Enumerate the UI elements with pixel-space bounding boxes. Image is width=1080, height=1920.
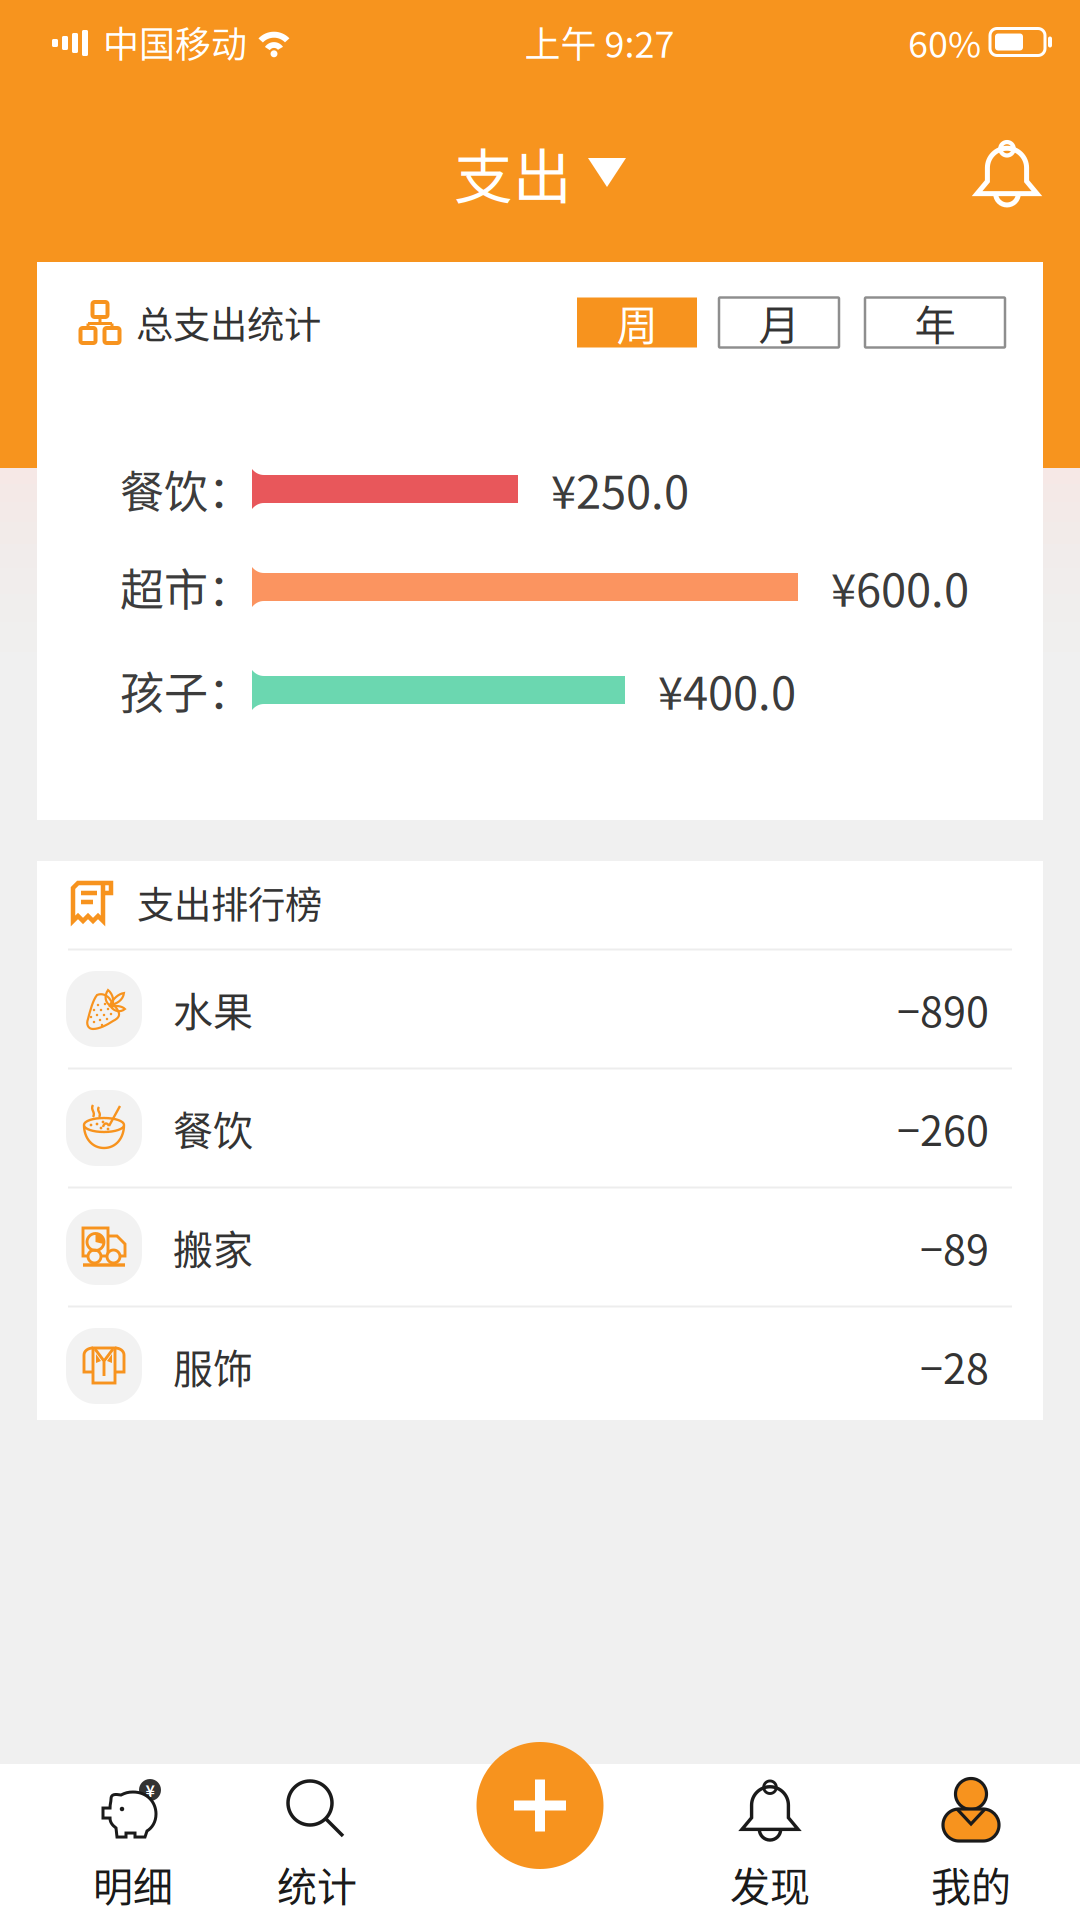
staticText: 餐饮 bbox=[173, 1099, 253, 1157]
button[interactable]: 统计 bbox=[266, 1764, 368, 1920]
staticText: −89 bbox=[920, 1217, 989, 1277]
staticText: 超市： bbox=[120, 555, 252, 619]
staticText: 月 bbox=[758, 293, 799, 352]
staticText: 我的 bbox=[931, 1855, 1011, 1913]
staticText: −260 bbox=[897, 1098, 989, 1158]
staticText: 60% bbox=[908, 16, 981, 68]
button[interactable]: 支出 bbox=[430, 112, 650, 233]
staticText: 支出 bbox=[454, 130, 572, 215]
button[interactable]: ¥ bbox=[0, 1764, 266, 1920]
staticText: 餐饮： bbox=[120, 457, 252, 521]
staticText: 发现 bbox=[730, 1855, 810, 1913]
staticText: −890 bbox=[897, 979, 989, 1039]
staticText: ¥600.0 bbox=[831, 554, 969, 620]
button[interactable]: 年 bbox=[865, 297, 1005, 347]
staticText: −28 bbox=[920, 1336, 989, 1396]
staticText: 统计 bbox=[277, 1855, 357, 1913]
button[interactable]: 餐饮 bbox=[37, 1069, 1043, 1186]
staticText: 上午 9:27 bbox=[524, 16, 674, 68]
button[interactable]: 服饰 bbox=[37, 1307, 1043, 1424]
staticText: 服饰 bbox=[173, 1337, 253, 1395]
button[interactable]: 搬家 bbox=[37, 1188, 1043, 1305]
staticText: 搬家 bbox=[173, 1218, 253, 1276]
staticText: ¥250.0 bbox=[551, 456, 689, 522]
staticText: ¥400.0 bbox=[658, 657, 796, 723]
staticText: 明细 bbox=[93, 1855, 173, 1913]
staticText: 中国移动 bbox=[103, 16, 247, 68]
button[interactable]: 通知 bbox=[952, 126, 1062, 220]
button[interactable]: 水果 bbox=[37, 950, 1043, 1067]
button[interactable]: 发现 bbox=[678, 1764, 862, 1920]
staticText: 周 bbox=[616, 293, 657, 352]
staticText: 总支出统计 bbox=[136, 295, 321, 350]
staticText: 支出排行榜 bbox=[137, 875, 322, 930]
button[interactable]: 月 bbox=[719, 297, 839, 347]
staticText: 年 bbox=[914, 293, 955, 352]
staticText: 水果 bbox=[173, 980, 253, 1038]
button[interactable]: 我的 bbox=[862, 1764, 1080, 1920]
staticText: ¥ bbox=[145, 1778, 154, 1802]
button[interactable]: 添加 bbox=[476, 1742, 603, 1869]
staticText: 孩子： bbox=[120, 658, 252, 722]
button[interactable]: 周 bbox=[577, 297, 697, 347]
